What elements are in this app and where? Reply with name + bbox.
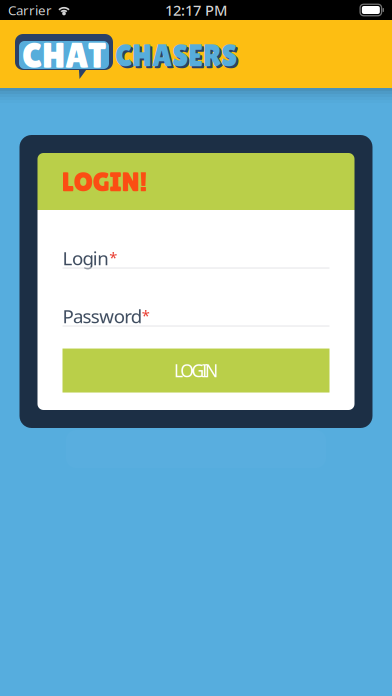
button[interactable]: LOGIN <box>62 348 329 392</box>
staticText: CHASERS <box>117 40 239 75</box>
staticText: CHAT <box>22 34 106 75</box>
staticText: 12:17 PM <box>165 0 227 20</box>
staticText: Password <box>62 304 142 328</box>
staticText: LOGIN! <box>61 165 147 197</box>
staticText: LOGIN <box>174 359 218 382</box>
staticText: CHASERS <box>115 38 237 73</box>
staticText: * <box>109 248 117 267</box>
staticText: * <box>142 306 150 325</box>
staticText: Login <box>62 246 109 270</box>
staticText: Carrier <box>8 1 52 19</box>
